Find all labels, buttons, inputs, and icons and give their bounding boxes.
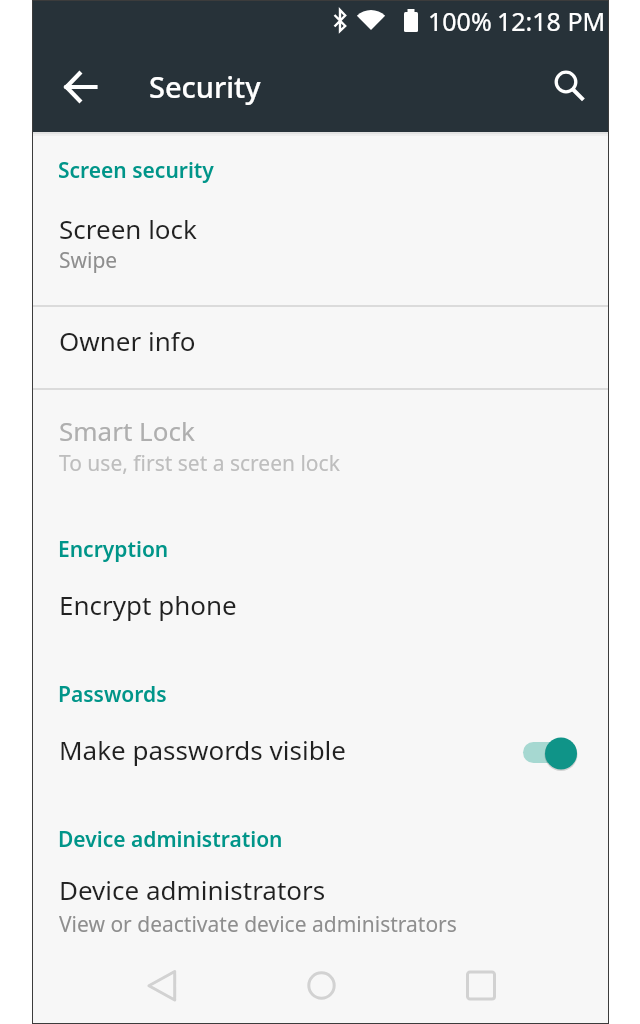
button[interactable]: Owner info [33,307,608,388]
staticText: Screen security [58,156,214,185]
staticText: Security [149,67,261,106]
button[interactable] [53,59,109,115]
staticText: 12:18 PM [497,4,606,38]
button[interactable] [538,58,594,114]
staticText: Make passwords visible [59,732,346,767]
staticText: Swipe [59,246,118,275]
staticText: 100% [428,4,492,38]
button[interactable]: Make passwords visible [33,713,608,795]
staticText: Encrypt phone [59,587,237,622]
staticText: Device administration [58,825,283,854]
button[interactable] [129,949,201,1021]
staticText: Screen lock [59,211,197,246]
button[interactable] [285,949,357,1021]
button[interactable]: Screen lock [33,197,608,305]
staticText: Owner info [59,323,196,358]
staticText: Encryption [58,535,169,564]
staticText: View or deactivate device administrators [59,910,457,939]
staticText: Device administrators [59,872,326,907]
button[interactable]: Encrypt phone [33,571,608,651]
button[interactable]: Device administrators [33,858,608,958]
staticText: Smart Lock [59,413,195,448]
button[interactable] [445,949,517,1021]
staticText: To use, first set a screen lock [59,449,340,478]
staticText: Passwords [58,680,167,709]
